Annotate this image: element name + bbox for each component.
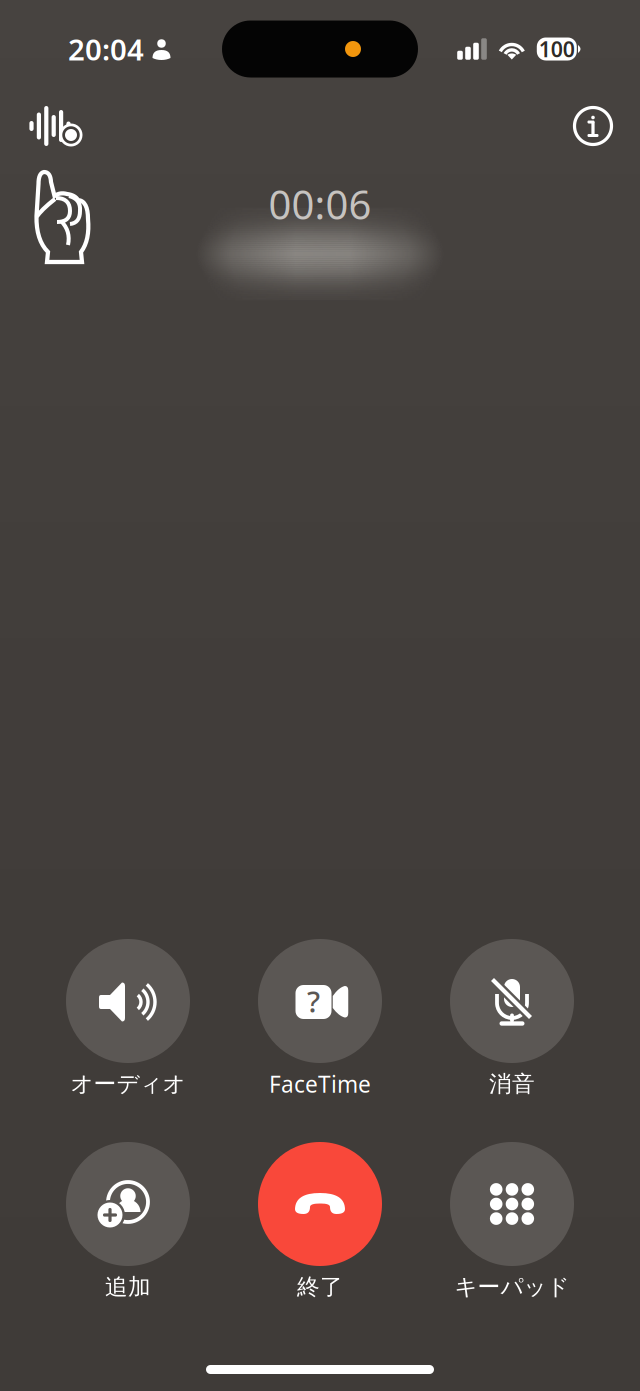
staticText: 終了 <box>297 1273 343 1301</box>
button[interactable]: Call details <box>562 101 640 151</box>
staticText: 追加 <box>105 1273 151 1301</box>
button[interactable]: オーディオ <box>66 939 190 1105</box>
staticText: キーパッド <box>454 1273 569 1301</box>
button[interactable]: Call recording <box>0 100 90 152</box>
staticText: 20:04 <box>68 29 144 68</box>
staticText: 消音 <box>489 1070 535 1098</box>
button[interactable]: キーパッド <box>450 1142 574 1308</box>
button[interactable]: 消音 <box>450 939 574 1105</box>
staticText: 00:06 <box>268 177 371 230</box>
button[interactable]: 追加 <box>66 1142 190 1308</box>
staticText: FaceTime <box>269 1069 371 1099</box>
button[interactable]: 終了 <box>258 1142 382 1308</box>
staticText: 100 <box>539 35 575 63</box>
staticText: オーディオ <box>70 1070 185 1098</box>
staticText: ? <box>307 981 320 1020</box>
button[interactable]: ? <box>258 939 382 1105</box>
